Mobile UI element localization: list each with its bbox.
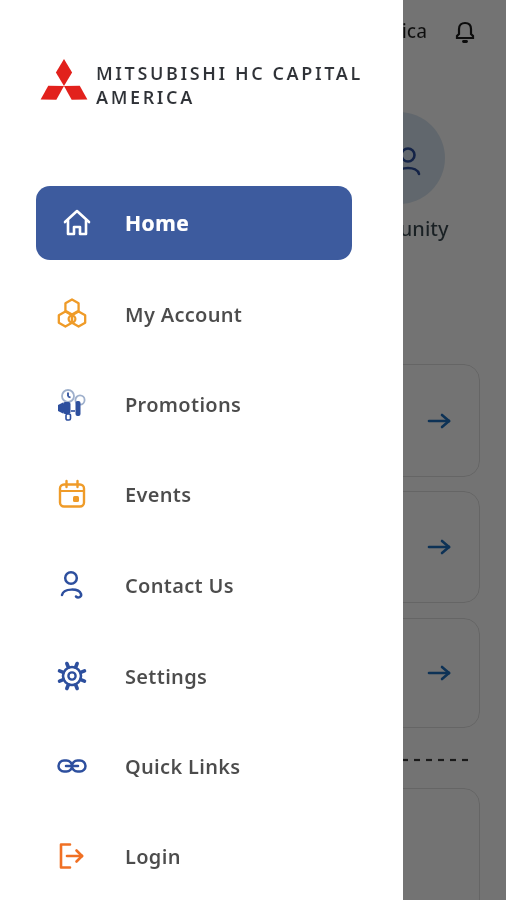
staticText: Contact Us	[125, 572, 234, 599]
button[interactable]: Home	[36, 186, 352, 260]
button[interactable]	[26, 364, 480, 477]
button[interactable]: Events	[36, 457, 366, 531]
staticText: Community	[337, 215, 449, 242]
staticText: My Account	[125, 301, 243, 328]
staticText: MITSUBISHI HC CAPITAL	[96, 61, 363, 86]
staticText: Home	[125, 209, 190, 238]
staticText: Settings	[125, 663, 208, 690]
staticText: Events	[125, 481, 192, 508]
button[interactable]	[26, 491, 480, 603]
button[interactable]	[26, 618, 480, 728]
button[interactable]: Settings	[36, 639, 366, 713]
button[interactable]: My Account	[36, 277, 366, 351]
staticText: Promotions	[125, 391, 242, 418]
button[interactable]: Login	[36, 819, 366, 893]
button[interactable]: Promotions	[36, 367, 366, 441]
button[interactable]: Quick Links	[36, 729, 366, 803]
staticText: Mitsubishi HC Capital America	[20, 18, 427, 44]
staticText: AMERICA	[96, 85, 195, 110]
staticText: Quick Links	[125, 753, 241, 780]
staticText: Login	[125, 843, 181, 870]
button[interactable]	[452, 19, 478, 45]
button[interactable]: Contact Us	[36, 548, 366, 622]
